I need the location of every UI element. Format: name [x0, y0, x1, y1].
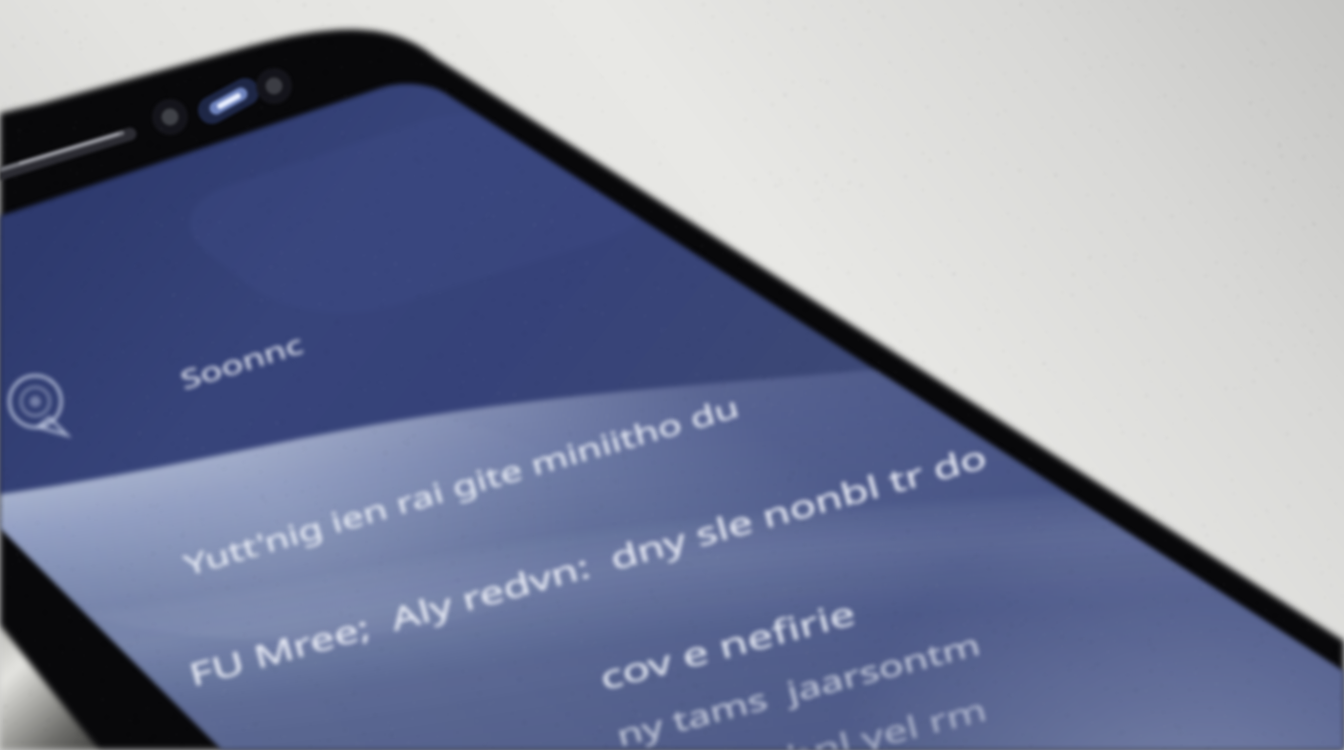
- button[interactable]: Open profile badge: [0, 353, 133, 450]
- button[interactable]: cov e nefirie: [219, 497, 1207, 750]
- button[interactable]: FU Mree; Aly redvn: dny sle nonbl tr do: [127, 407, 1073, 726]
- button[interactable]: Yutt'nig ien rai gite miniitho du: [28, 312, 934, 636]
- button[interactable]: ny tams jaarsontm: [307, 583, 1344, 750]
- button[interactable]: Soonnc: [0, 263, 411, 479]
